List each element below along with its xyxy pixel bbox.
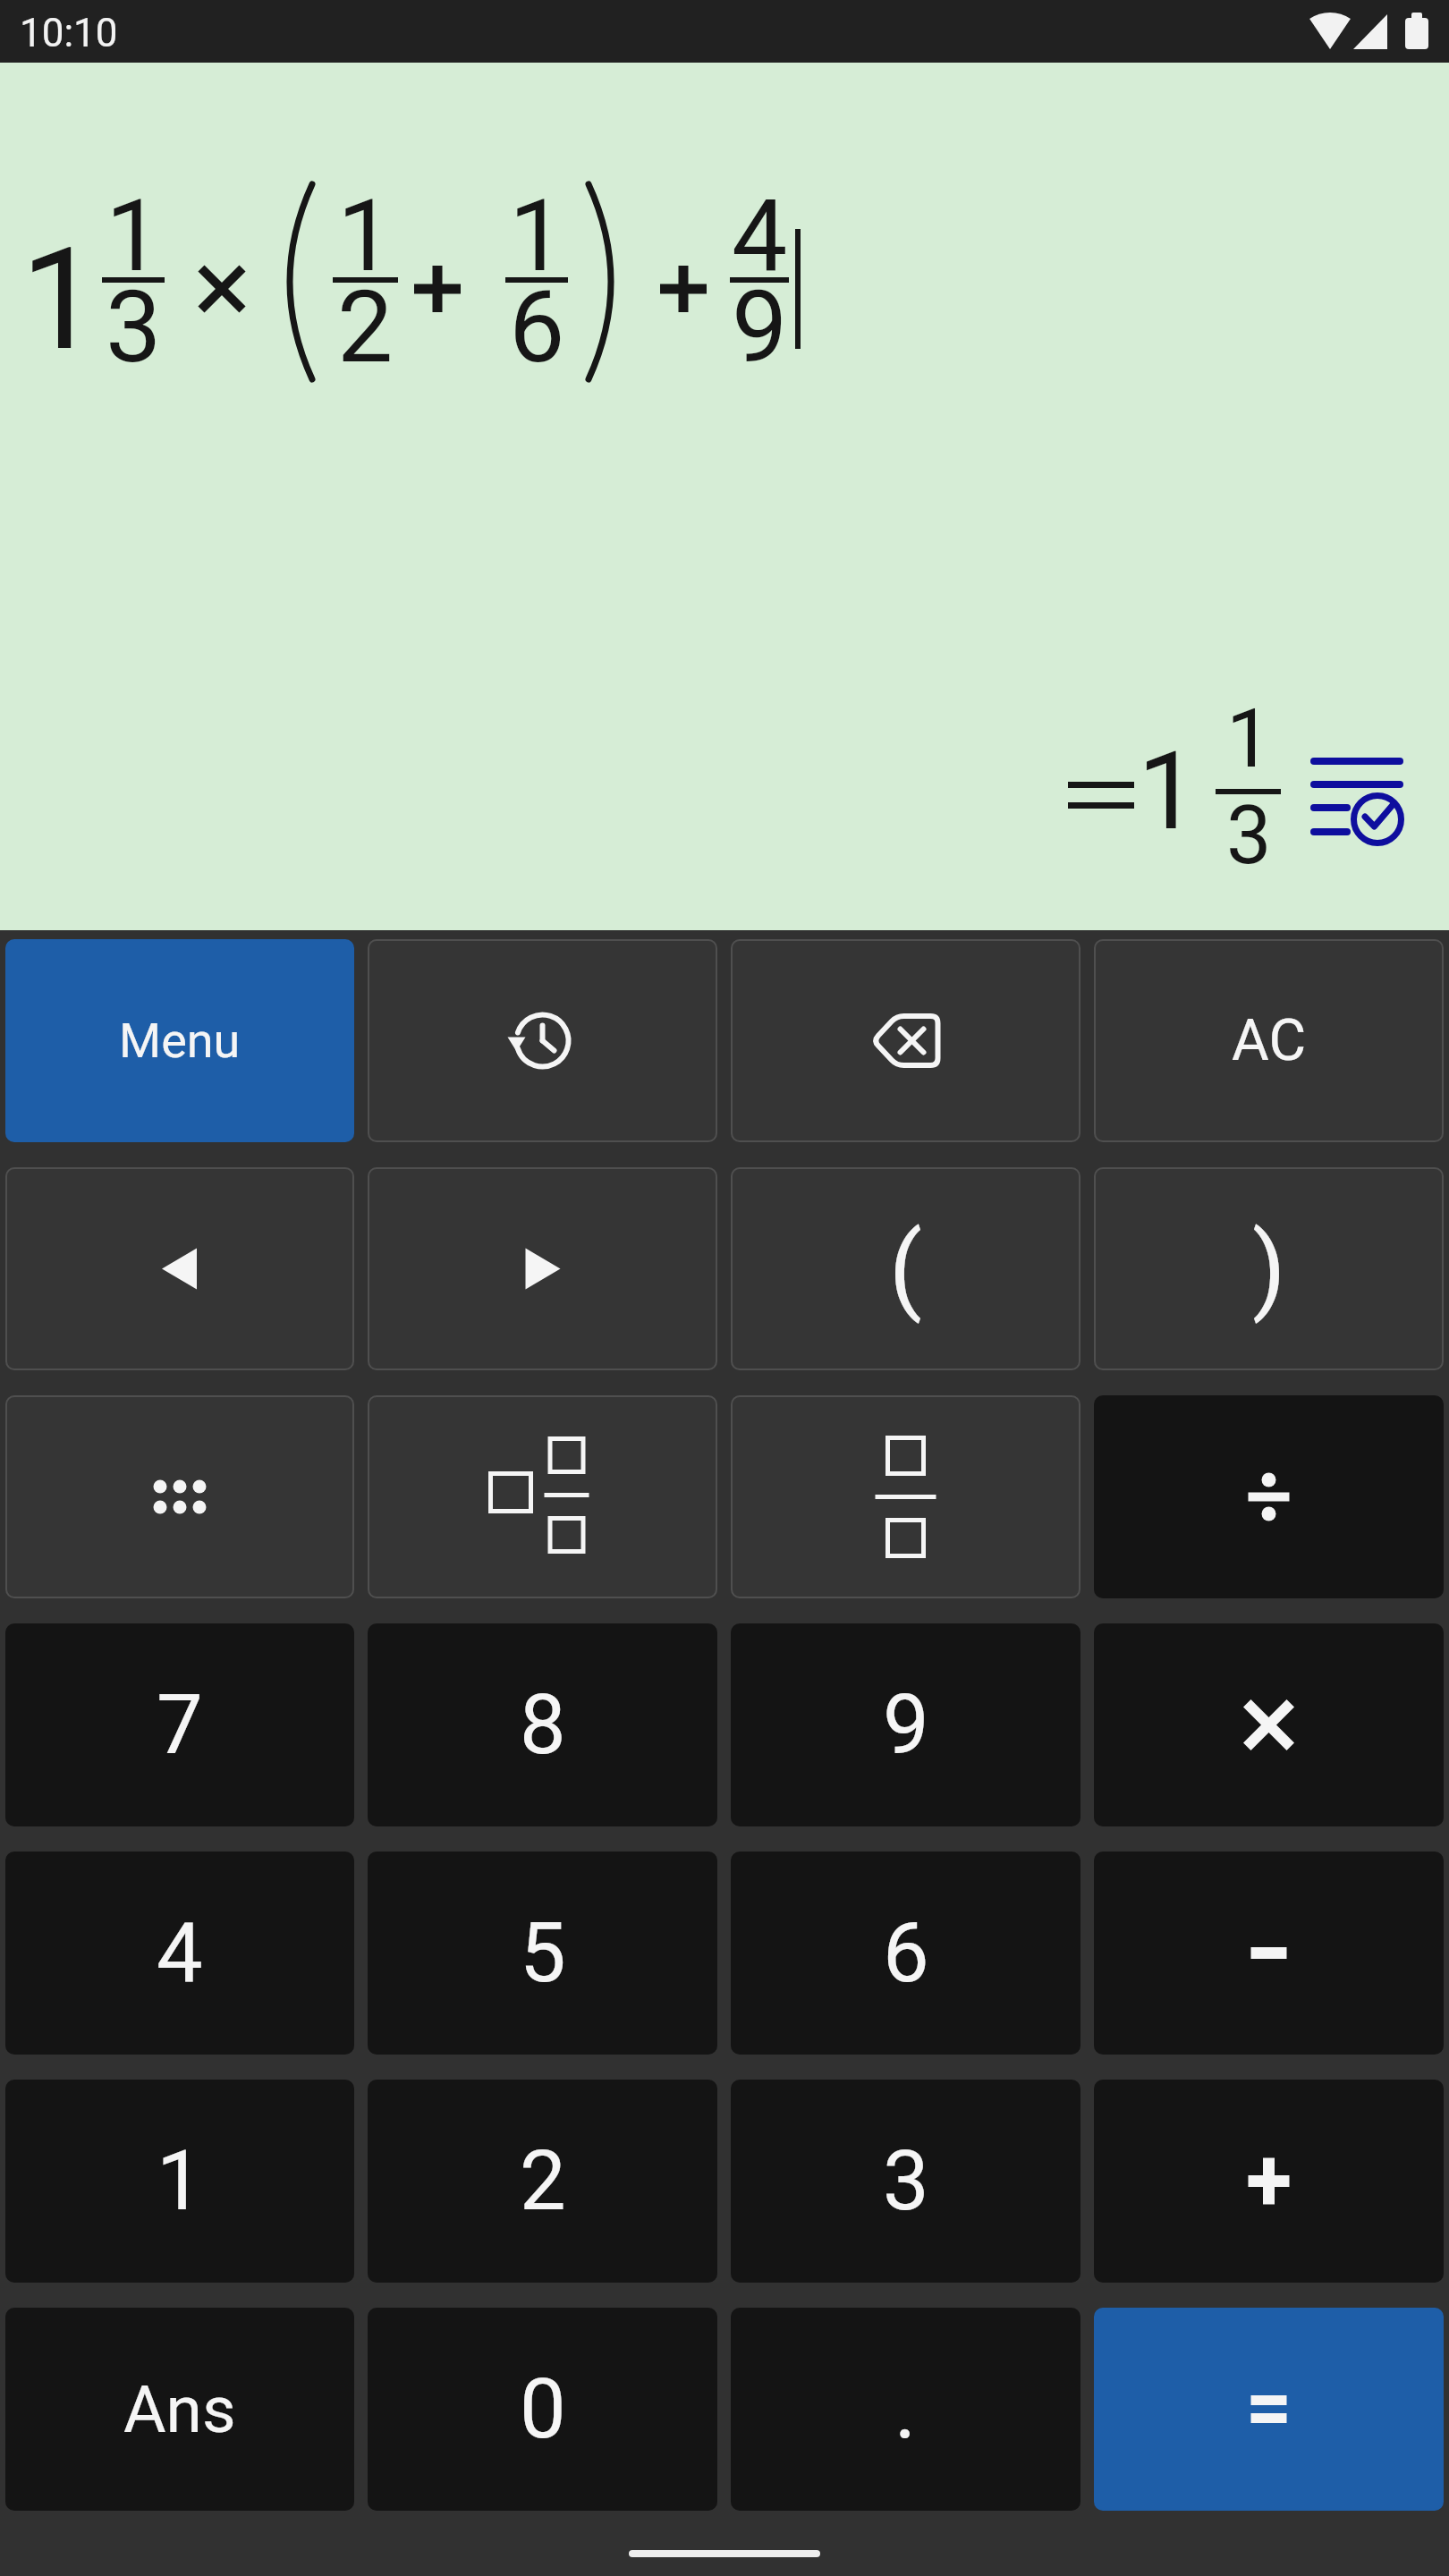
button[interactable]: 0	[368, 2308, 717, 2511]
staticText: 1	[106, 178, 162, 294]
staticText: 1	[1138, 729, 1199, 855]
staticText: .	[894, 2361, 917, 2458]
button[interactable]: 4	[5, 1851, 354, 2055]
staticText: 1	[21, 216, 100, 382]
button[interactable]: Menu	[5, 939, 354, 1142]
staticText: 6	[509, 269, 565, 386]
button[interactable]: 8	[368, 1623, 717, 1826]
staticText: )	[1252, 1212, 1286, 1326]
button[interactable]	[731, 939, 1080, 1142]
button[interactable]	[1094, 1851, 1444, 2055]
staticText: Menu	[119, 1013, 241, 1069]
button[interactable]	[368, 1167, 717, 1370]
button[interactable]	[368, 1395, 717, 1598]
button[interactable]: AC	[1094, 939, 1444, 1142]
button[interactable]	[5, 1395, 354, 1598]
button[interactable]	[1094, 1623, 1444, 1826]
staticText: 0	[520, 2361, 566, 2458]
button[interactable]: (	[731, 1167, 1080, 1370]
button[interactable]	[1094, 2080, 1444, 2283]
staticText: 4	[732, 178, 788, 294]
staticText: Ans	[123, 2371, 236, 2448]
staticText: 1	[509, 178, 565, 294]
button[interactable]: 2	[368, 2080, 717, 2283]
button[interactable]	[1094, 1395, 1444, 1598]
button[interactable]: 9	[731, 1623, 1080, 1826]
button[interactable]: 1	[5, 2080, 354, 2283]
button[interactable]	[1306, 751, 1413, 850]
button[interactable]	[731, 1395, 1080, 1598]
staticText: 2	[520, 2133, 566, 2230]
staticText: 5	[520, 1905, 566, 2002]
staticText: 1	[337, 178, 394, 294]
staticText: (	[889, 1212, 922, 1326]
staticText: 10:10	[20, 10, 118, 56]
staticText: 1	[1226, 692, 1272, 786]
staticText: 4	[157, 1905, 203, 2002]
staticText: 3	[883, 2133, 929, 2230]
staticText: AC	[1232, 1007, 1307, 1074]
staticText: 6	[883, 1905, 929, 2002]
button[interactable]: 5	[368, 1851, 717, 2055]
staticText: 3	[1226, 789, 1272, 883]
staticText: 9	[883, 1677, 929, 1774]
staticText: 2	[337, 269, 394, 386]
button[interactable]: 3	[731, 2080, 1080, 2283]
staticText: 8	[520, 1677, 566, 1774]
button[interactable]	[368, 939, 717, 1142]
button[interactable]: Ans	[5, 2308, 354, 2511]
staticText: 7	[157, 1677, 203, 1774]
button[interactable]	[1094, 2308, 1444, 2511]
button[interactable]: 7	[5, 1623, 354, 1826]
staticText: 9	[732, 269, 788, 386]
button[interactable]	[5, 1167, 354, 1370]
button[interactable]: .	[731, 2308, 1080, 2511]
staticText: 1	[157, 2133, 203, 2230]
staticText: 3	[106, 269, 162, 386]
button[interactable]: )	[1094, 1167, 1444, 1370]
button[interactable]: 6	[731, 1851, 1080, 2055]
